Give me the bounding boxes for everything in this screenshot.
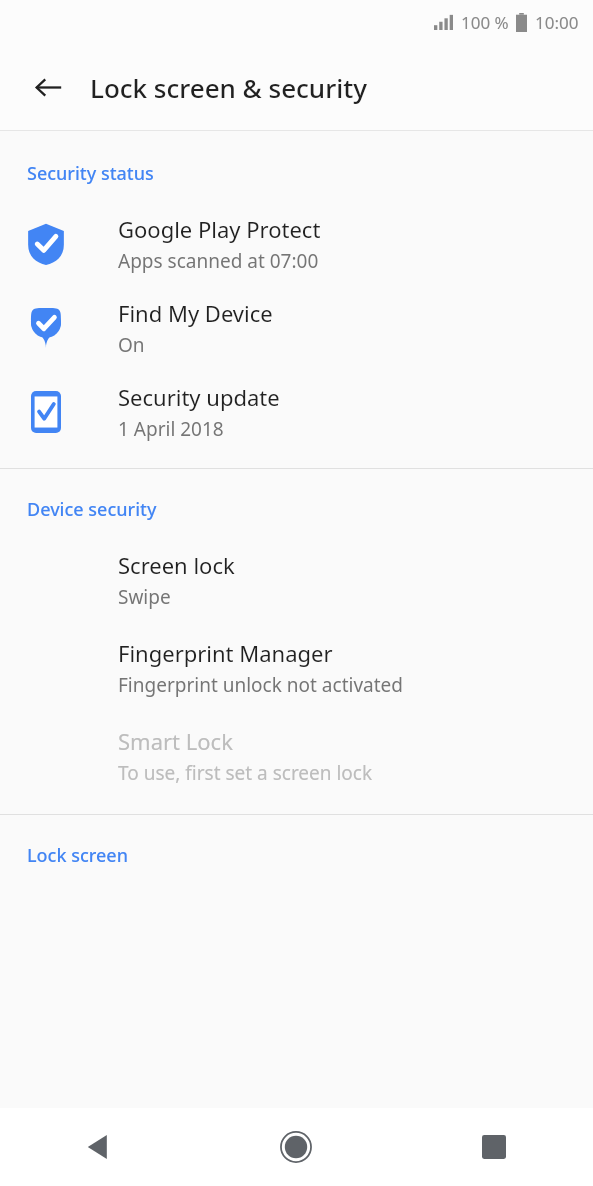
button[interactable]: Smart Lock [0,714,593,802]
button[interactable]: Recents [395,1108,593,1186]
staticText: 10:00 [535,11,579,34]
staticText: Find My Device [118,298,273,328]
button[interactable]: Home [197,1108,395,1186]
staticText: Apps scanned at 07:00 [118,248,319,274]
staticText: 100 % [461,11,509,34]
staticText: Google Play Protect [118,214,321,244]
button[interactable]: Back [0,1108,197,1186]
staticText: Screen lock [118,550,235,580]
staticText: Lock screen [27,843,128,868]
button[interactable]: Security update [0,372,593,456]
button[interactable]: Google Play Protect [0,204,593,288]
staticText: To use, first set a screen lock [118,760,373,786]
staticText: Smart Lock [118,726,233,756]
staticText: Swipe [118,584,171,610]
staticText: Lock screen & security [90,70,367,105]
button[interactable]: Find My Device [0,288,593,372]
button[interactable]: Back [20,59,76,115]
staticText: On [118,332,145,358]
staticText: Security update [118,382,280,412]
staticText: Fingerprint Manager [118,638,333,668]
staticText: Device security [27,497,157,522]
button[interactable]: Fingerprint Manager [0,626,593,714]
staticText: Fingerprint unlock not activated [118,672,403,698]
staticText: Security status [27,161,154,186]
button[interactable]: Screen lock [0,538,593,626]
staticText: 1 April 2018 [118,416,224,442]
